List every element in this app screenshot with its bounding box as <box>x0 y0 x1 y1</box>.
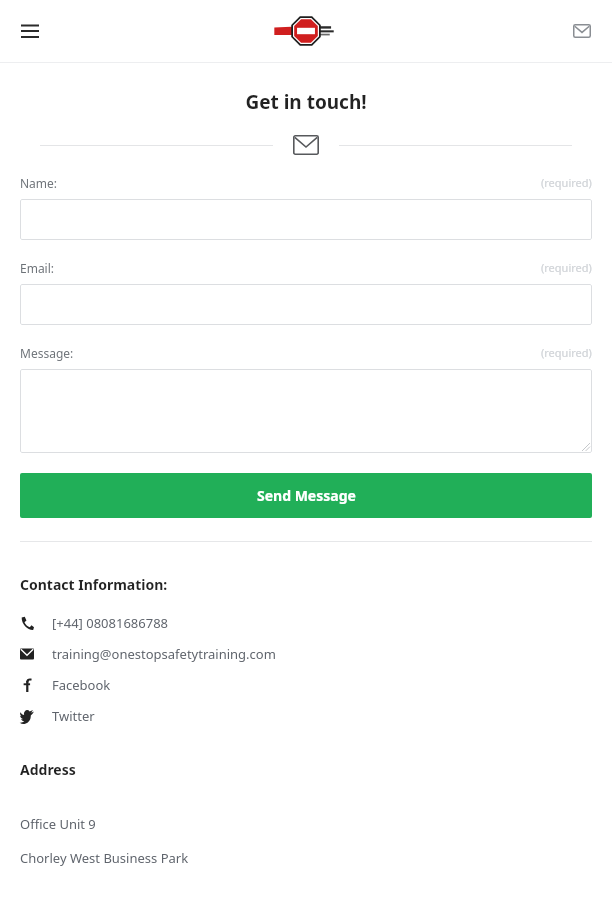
button[interactable]: [+44] 08081686788 <box>20 607 592 638</box>
staticText: Facebook <box>52 676 111 694</box>
button[interactable]: training@onestopsafetytraining.com <box>20 638 592 669</box>
staticText: Send Message <box>257 486 356 505</box>
button[interactable]: Contact <box>564 13 600 49</box>
staticText: Email: <box>20 260 55 276</box>
staticText: Chorley West Business Park <box>20 849 189 867</box>
staticText: Contact Information: <box>20 575 168 594</box>
button[interactable]: Text input <box>20 199 592 240</box>
staticText: Twitter <box>52 707 95 725</box>
button[interactable]: Menu <box>12 13 48 49</box>
button[interactable]: One Stop Safety Training logo <box>273 14 339 48</box>
staticText: Office Unit 9 <box>20 815 96 833</box>
staticText: (required) <box>541 345 592 360</box>
button[interactable]: Message input <box>20 369 592 453</box>
button[interactable]: Text input <box>20 284 592 325</box>
staticText: Message: <box>20 345 74 361</box>
button[interactable]: Send Message <box>20 473 592 518</box>
staticText: training@onestopsafetytraining.com <box>52 645 276 663</box>
staticText: Address <box>20 760 76 779</box>
staticText: (required) <box>541 175 592 190</box>
staticText: (required) <box>541 260 592 275</box>
staticText: [+44] 08081686788 <box>52 614 169 632</box>
button[interactable]: Twitter <box>20 700 592 731</box>
staticText: Get in touch! <box>0 89 612 115</box>
button[interactable]: Facebook <box>20 669 592 700</box>
staticText: Name: <box>20 175 58 191</box>
